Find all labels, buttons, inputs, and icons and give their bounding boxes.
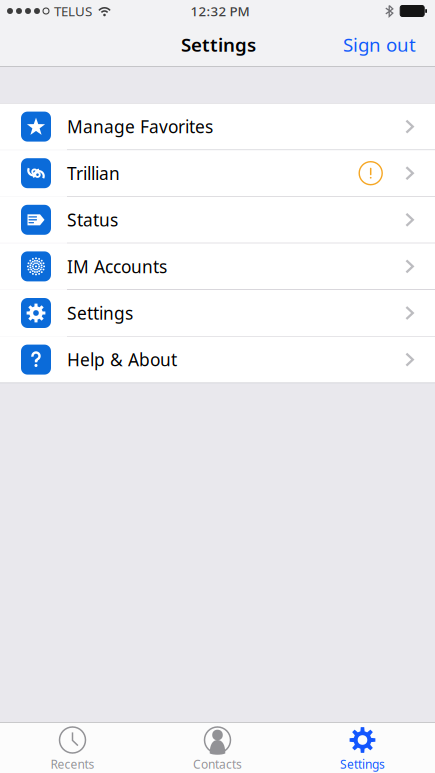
button[interactable]: Manage Favorites (0, 104, 435, 150)
staticText: Settings (67, 301, 133, 324)
staticText: Sign out (343, 32, 416, 57)
button[interactable]: Contacts (145, 722, 290, 773)
staticText: TELUS (54, 2, 92, 20)
button[interactable]: Trillian (0, 150, 435, 196)
staticText: Settings (340, 756, 385, 772)
button[interactable]: Recents (0, 722, 145, 773)
staticText: Trillian (67, 162, 120, 185)
staticText: 12:32 PM (190, 2, 249, 20)
button[interactable]: IM Accounts (0, 243, 435, 289)
button[interactable]: Settings (290, 722, 435, 773)
staticText: Recents (50, 756, 94, 772)
staticText: IM Accounts (67, 255, 167, 278)
button[interactable]: Sign out (329, 22, 416, 67)
button[interactable]: Status (0, 197, 435, 243)
staticText: Help & About (67, 348, 177, 371)
staticText: Status (67, 208, 118, 231)
staticText: Contacts (193, 756, 242, 772)
staticText: Settings (181, 32, 256, 57)
button[interactable]: Help & About (0, 337, 435, 383)
button[interactable]: Settings (0, 290, 435, 336)
staticText: Manage Favorites (67, 115, 213, 138)
